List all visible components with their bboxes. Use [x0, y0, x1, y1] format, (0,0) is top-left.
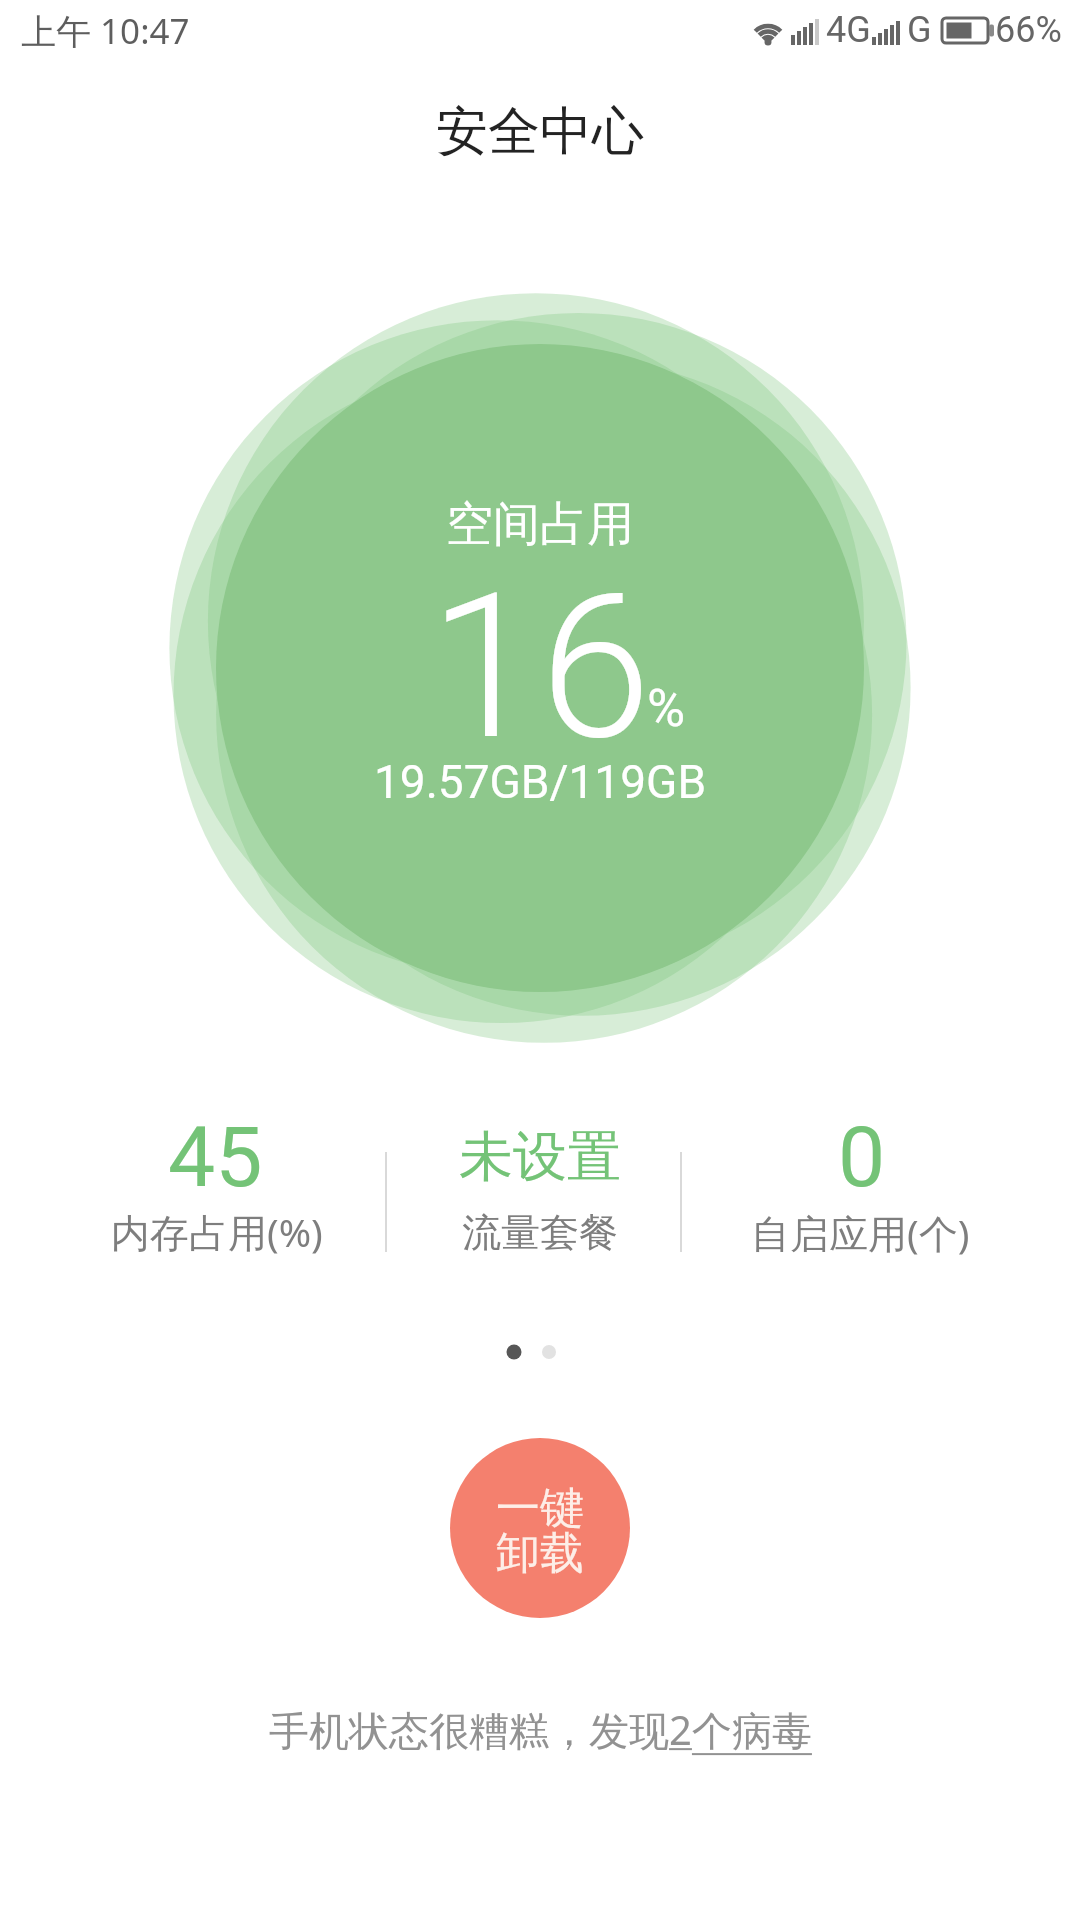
staticText: 4G — [826, 9, 871, 51]
staticText: 19.57GB/119GB — [374, 755, 707, 809]
staticText: 0 — [838, 1108, 886, 1206]
staticText: 自启应用(个) — [751, 1206, 970, 1259]
staticText: % — [647, 678, 686, 739]
staticText: 66% — [995, 9, 1062, 51]
staticText: 未设置 — [459, 1123, 621, 1191]
staticText: 内存占用(%) — [111, 1205, 323, 1258]
staticText: 安全中心 — [436, 99, 644, 165]
staticText: 卸载 — [496, 1526, 584, 1581]
staticText: 45 — [168, 1108, 263, 1206]
staticText: 流量套餐 — [462, 1208, 618, 1257]
staticText: 手机状态很糟糕，发现2个病毒 — [269, 1702, 812, 1757]
staticText: 空间占用 — [446, 495, 634, 554]
staticText: 一键 — [496, 1481, 584, 1536]
staticText: 16 — [429, 550, 651, 784]
staticText: 上午 10:47 — [21, 7, 190, 55]
staticText: G — [907, 9, 932, 51]
